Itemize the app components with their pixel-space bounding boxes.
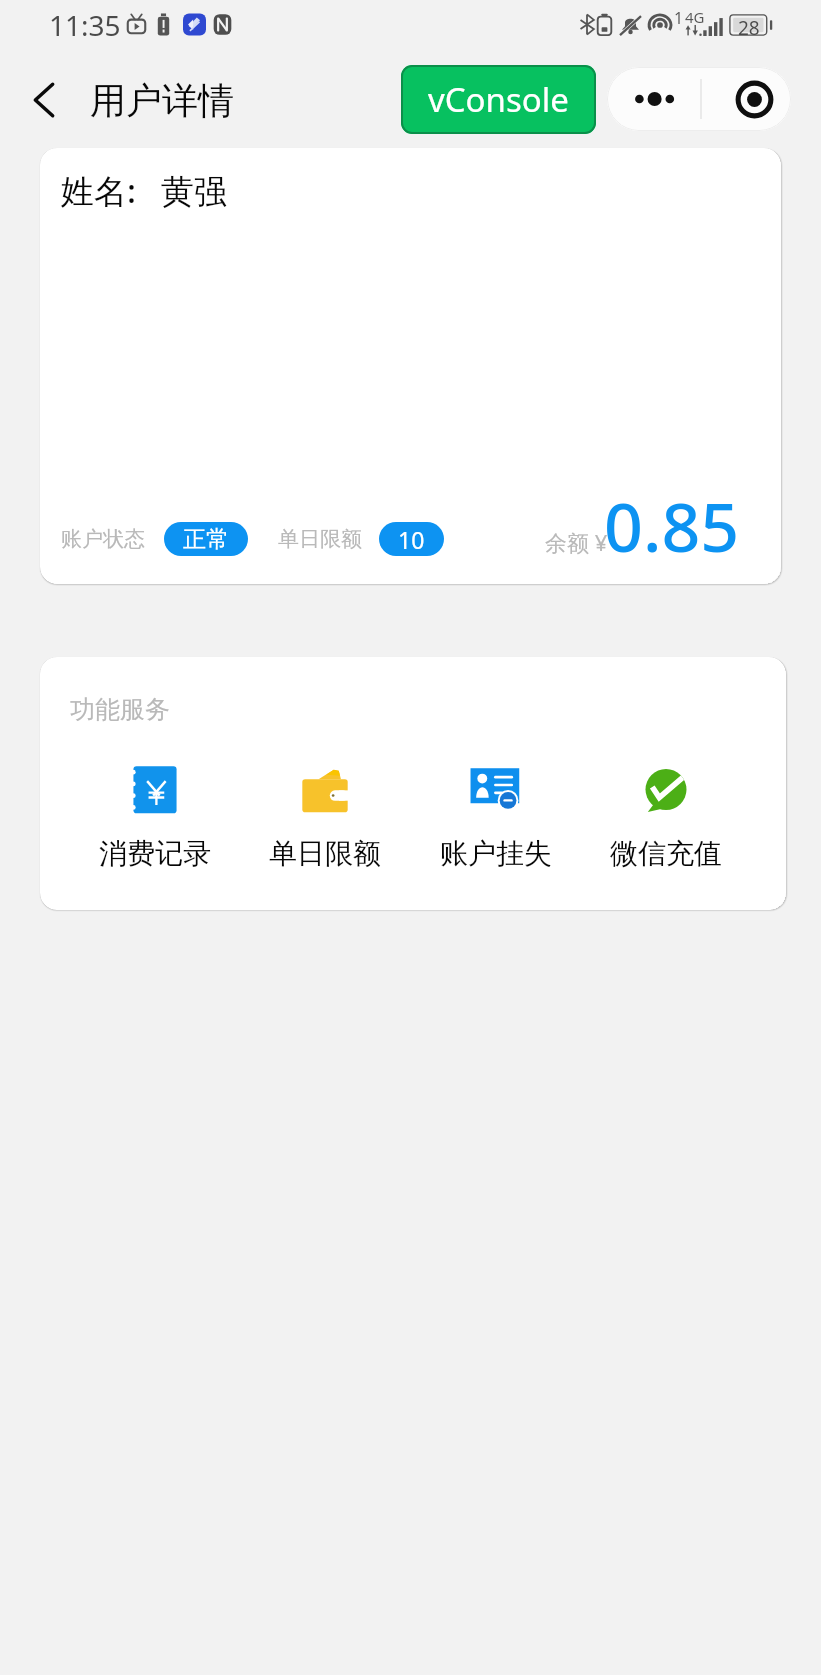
button[interactable]: 单日限额 <box>240 752 410 892</box>
staticText: 10 <box>398 524 425 555</box>
button[interactable]: vConsole <box>401 65 596 134</box>
staticText: 用户详情 <box>90 78 234 123</box>
staticText: 单日限额 <box>269 836 381 871</box>
staticText: vConsole <box>428 77 569 122</box>
staticText: 功能服务 <box>70 694 170 725</box>
staticText: 消费记录 <box>99 836 211 871</box>
button[interactable]: Close <box>718 67 791 131</box>
button[interactable]: More <box>610 67 700 131</box>
staticText: 28 <box>738 15 760 41</box>
button[interactable]: 微信充值 <box>581 752 751 892</box>
staticText: 微信充值 <box>610 836 722 871</box>
button[interactable]: Back <box>16 75 72 125</box>
staticText: 1 <box>674 7 684 29</box>
staticText: 单日限额 <box>278 526 362 552</box>
staticText: 正常 <box>183 525 229 554</box>
staticText: 11:35 <box>49 6 121 44</box>
staticText: 余额 ¥ <box>545 527 608 557</box>
staticText: 4G <box>685 7 705 27</box>
button[interactable]: 账户挂失 <box>411 752 581 892</box>
staticText: 姓名: 黄强 <box>61 168 228 213</box>
button[interactable]: 消费记录 <box>70 752 240 892</box>
staticText: 0.85 <box>604 479 740 572</box>
staticText: 账户状态 <box>61 526 145 552</box>
staticText: 账户挂失 <box>440 836 552 871</box>
